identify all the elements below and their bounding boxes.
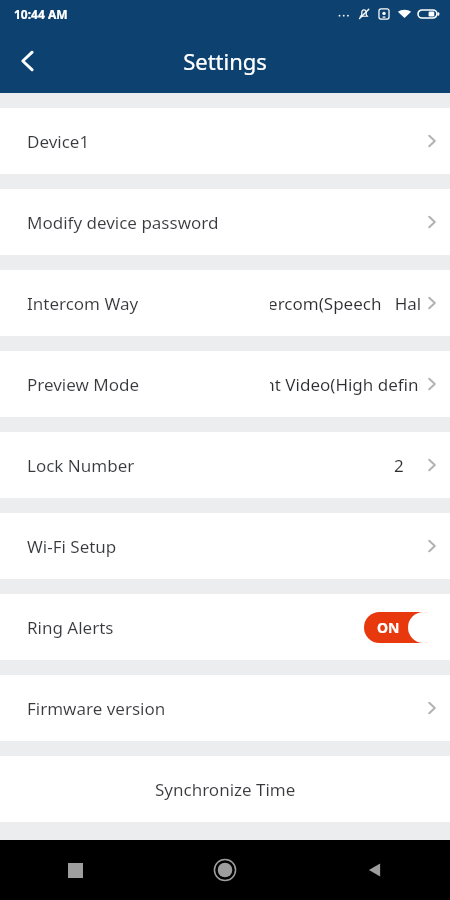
staticText: Fluent Video(High definition) <box>270 373 420 396</box>
staticText: Ring Alerts <box>27 616 114 639</box>
button[interactable]: Wi-Fi Setup <box>0 513 450 579</box>
button[interactable]: Ring Alerts toggle, on <box>362 594 450 660</box>
staticText: Intercom Way <box>27 292 139 315</box>
staticText: Device1 <box>27 130 90 153</box>
button[interactable]: Intercom Way <box>0 270 450 336</box>
button[interactable]: Ring Alerts <box>0 594 450 660</box>
staticText: Voice Intercom(Speech Half-duplex) <box>270 292 420 315</box>
staticText: Modify device password <box>27 211 219 234</box>
staticText: Wi-Fi Setup <box>27 535 117 558</box>
button[interactable]: Preview Mode <box>0 351 450 417</box>
staticText: ON <box>377 618 400 637</box>
button[interactable]: Synchronize Time <box>0 756 450 822</box>
button[interactable]: Lock Number <box>0 432 450 498</box>
button[interactable]: Device1 <box>0 108 450 174</box>
staticText: Lock Number <box>27 454 135 477</box>
staticText: Synchronize Time <box>155 778 296 801</box>
staticText: Settings <box>183 46 267 76</box>
button[interactable]: Modify device password <box>0 189 450 255</box>
button[interactable]: Back <box>0 33 56 89</box>
staticText: 2 <box>394 454 404 477</box>
button[interactable]: Home <box>150 840 300 900</box>
button[interactable]: Recent apps <box>0 840 150 900</box>
staticText: 10:44 AM <box>14 6 68 22</box>
staticText: Firmware version <box>27 697 166 720</box>
staticText: Preview Mode <box>27 373 140 396</box>
button[interactable]: Back <box>300 840 450 900</box>
button[interactable]: Firmware version <box>0 675 450 741</box>
